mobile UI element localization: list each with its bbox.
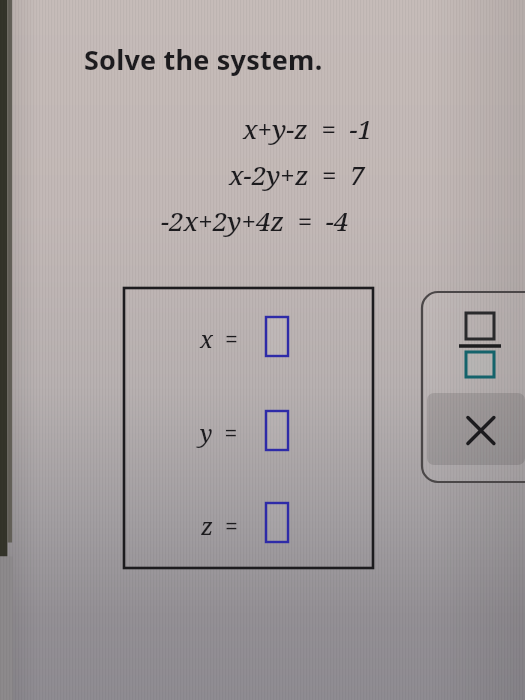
staticText: z =	[201, 510, 238, 541]
button[interactable]: Answer input	[266, 317, 288, 356]
staticText: −2x+2y+4z = −4	[161, 203, 349, 238]
button[interactable]: Fraction template	[452, 305, 508, 367]
staticText: x+y−z = −1	[243, 111, 373, 146]
button[interactable]: Clear	[427, 393, 525, 465]
staticText: x =	[200, 323, 238, 354]
button[interactable]: Answer input	[266, 411, 288, 450]
button[interactable]: Answer input	[266, 503, 288, 542]
staticText: Solve the system.	[84, 41, 323, 78]
staticText: x−2y+z = 7	[229, 157, 365, 192]
staticText: y =	[200, 417, 238, 448]
